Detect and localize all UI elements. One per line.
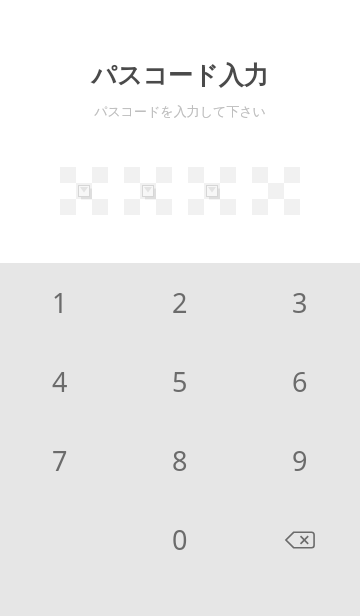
staticText: パスコード入力: [91, 60, 269, 91]
button[interactable]: 7: [0, 421, 120, 500]
staticText: パスコードを入力して下さい: [94, 103, 266, 119]
button[interactable]: 9: [240, 421, 360, 500]
button[interactable]: Backspace: [240, 500, 360, 579]
staticText: 9: [292, 442, 308, 479]
staticText: 3: [292, 284, 308, 321]
staticText: 0: [172, 521, 188, 558]
button[interactable]: 3: [240, 263, 360, 342]
staticText: 5: [172, 363, 188, 400]
staticText: 4: [52, 363, 68, 400]
button[interactable]: 2: [120, 263, 240, 342]
staticText: 2: [172, 284, 188, 321]
button[interactable]: 4: [0, 342, 120, 421]
staticText: 6: [292, 363, 308, 400]
staticText: 1: [52, 284, 68, 321]
button[interactable]: 8: [120, 421, 240, 500]
button[interactable]: 6: [240, 342, 360, 421]
button[interactable]: 0: [120, 500, 240, 579]
staticText: 8: [172, 442, 188, 479]
button[interactable]: 1: [0, 263, 120, 342]
button[interactable]: 5: [120, 342, 240, 421]
staticText: 7: [52, 442, 68, 479]
